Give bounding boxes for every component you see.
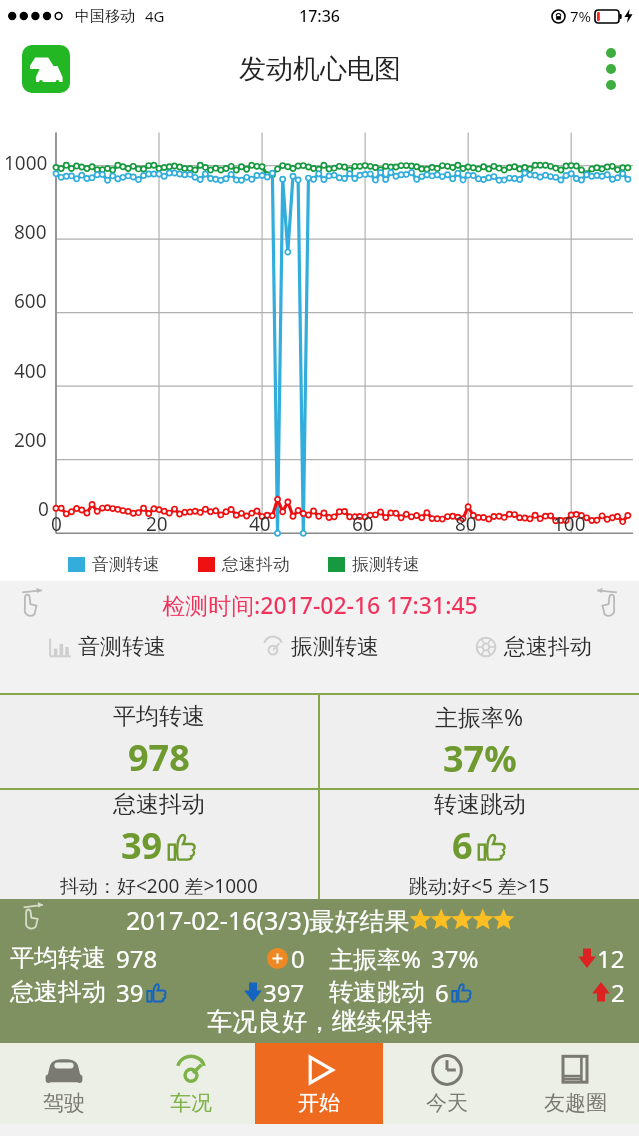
staticText: 4G <box>145 6 165 26</box>
staticText: 怠速抖动 <box>113 790 205 819</box>
staticText: 6 <box>452 821 473 870</box>
staticText: 音测转速 <box>78 633 166 661</box>
staticText: 12 <box>597 942 625 975</box>
button[interactable]: 今天 <box>383 1043 511 1124</box>
staticText: 20 <box>146 511 168 537</box>
staticText: 怠速抖动 <box>222 554 290 575</box>
staticText: 7% <box>570 6 592 26</box>
staticText: 发动机心电图 <box>239 52 401 86</box>
staticText: 平均转速 <box>10 943 106 973</box>
staticText: 37% <box>431 942 479 975</box>
staticText: 振测转速 <box>352 554 420 575</box>
button[interactable]: 主振率% <box>320 695 639 788</box>
button[interactable]: 平均转速 <box>0 695 318 788</box>
staticText: 60 <box>352 511 374 537</box>
staticText: 跳动:好<5 差>15 <box>409 873 550 899</box>
button[interactable]: 音测转速 <box>0 627 213 667</box>
staticText: 800 <box>14 219 47 245</box>
staticText: 0 <box>51 511 62 537</box>
staticText: 驾驶 <box>43 1090 85 1116</box>
button[interactable]: App icon <box>22 45 70 93</box>
staticText: 1000 <box>4 150 48 176</box>
staticText: 振测转速 <box>291 633 379 661</box>
staticText: 转速跳动 <box>434 790 526 819</box>
button[interactable]: Previous record <box>14 901 46 933</box>
button[interactable]: 车况 <box>127 1043 255 1124</box>
staticText: 37% <box>443 734 517 783</box>
button[interactable]: 驾驶 <box>0 1043 127 1124</box>
staticText: 200 <box>14 427 47 453</box>
staticText: 今天 <box>426 1090 468 1116</box>
button[interactable]: More options <box>583 31 639 107</box>
staticText: 中国移动 <box>75 7 135 26</box>
staticText: 主振率% <box>435 701 524 732</box>
staticText: 40 <box>249 511 271 537</box>
button[interactable]: Swipe right <box>593 587 627 621</box>
staticText: 80 <box>455 511 477 537</box>
button[interactable]: 怠速抖动 <box>426 627 639 667</box>
staticText: 600 <box>14 288 47 314</box>
staticText: 平均转速 <box>113 702 205 731</box>
staticText: 开始 <box>298 1090 340 1116</box>
staticText: 100 <box>553 511 586 537</box>
staticText: 怠速抖动 <box>10 977 106 1007</box>
staticText: 抖动：好<200 差>1000 <box>60 873 258 899</box>
button[interactable]: 开始 <box>255 1043 383 1124</box>
button[interactable]: 振测转速 <box>213 627 426 667</box>
staticText: 39 <box>116 976 144 1009</box>
staticText: 0 <box>291 942 305 975</box>
staticText: 978 <box>128 733 190 782</box>
staticText: 主振率% <box>329 942 421 975</box>
staticText: 6 <box>435 976 449 1009</box>
button[interactable]: 转速跳动 <box>320 790 639 899</box>
button[interactable]: 友趣圈 <box>511 1043 639 1124</box>
staticText: 车况 <box>170 1090 212 1116</box>
staticText: 39 <box>121 821 163 870</box>
staticText: 2 <box>611 976 625 1009</box>
staticText: 车况良好，继续保持 <box>207 1006 432 1037</box>
staticText: 转速跳动 <box>329 977 425 1007</box>
button[interactable]: 怠速抖动 <box>0 790 318 899</box>
staticText: 400 <box>14 358 47 384</box>
staticText: 978 <box>116 942 158 975</box>
button[interactable]: Swipe left <box>12 587 46 621</box>
staticText: 0 <box>38 496 49 522</box>
staticText: 397 <box>263 976 305 1009</box>
staticText: 音测转速 <box>92 554 160 575</box>
staticText: 检测时间:2017-02-16 17:31:45 <box>162 589 478 620</box>
staticText: 怠速抖动 <box>504 633 592 661</box>
staticText: 友趣圈 <box>544 1090 607 1116</box>
staticText: 17:36 <box>299 5 340 27</box>
staticText: 2017-02-16(3/3)最好结果 <box>126 903 410 937</box>
